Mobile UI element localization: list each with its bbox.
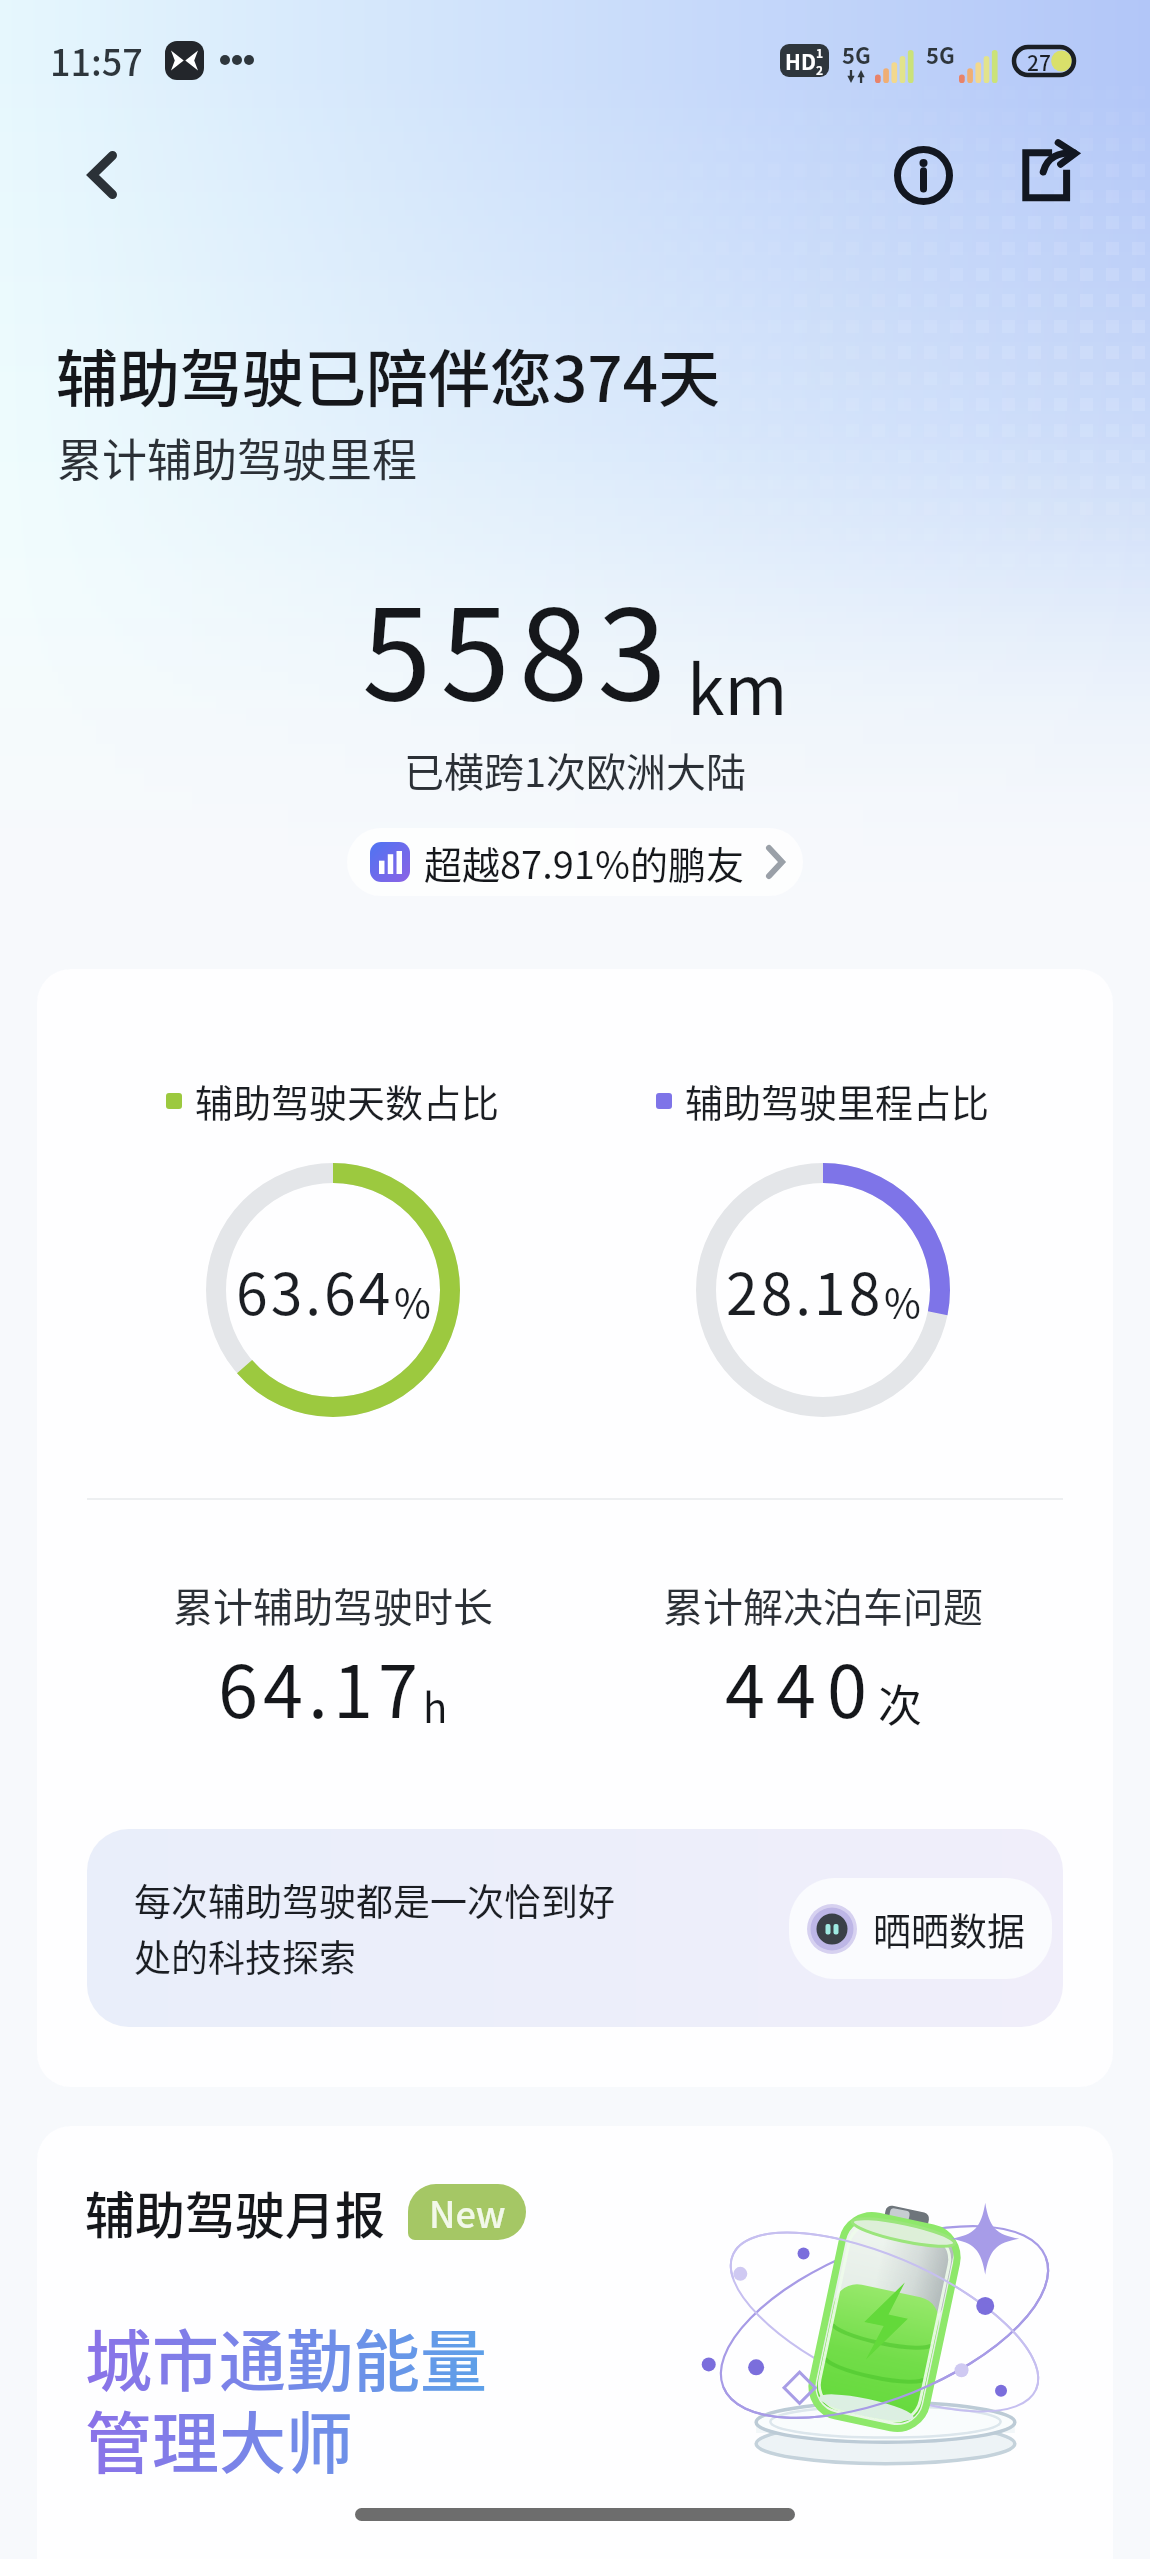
staticText: HD — [785, 46, 816, 76]
staticText: 辅助驾驶天数占比 — [195, 1073, 500, 1128]
staticText: 累计解决泊车问题 — [663, 1576, 983, 1634]
staticText: 27 — [1027, 47, 1051, 75]
button[interactable]: Info — [875, 127, 971, 223]
button[interactable]: 辅助驾驶月报 — [37, 2126, 1113, 2559]
staticText: 2 — [816, 61, 824, 77]
staticText: h — [423, 1677, 448, 1735]
button[interactable]: 超越87.91%的鹏友 — [347, 828, 803, 896]
staticText: 次 — [878, 1671, 922, 1735]
staticText: 每次辅助驾驶都是一次恰到好 处的科技探索 — [134, 1873, 615, 1983]
staticText: 440 — [725, 1634, 878, 1738]
staticText: 64.17 — [218, 1634, 423, 1738]
staticText: 5583 — [362, 555, 676, 736]
staticText: % — [884, 1272, 921, 1330]
button[interactable]: Share — [997, 127, 1093, 223]
staticText: 辅助驾驶里程占比 — [685, 1073, 990, 1128]
staticText: 超越87.91%的鹏友 — [424, 835, 744, 890]
staticText: 晒晒数据 — [873, 1901, 1026, 1956]
staticText: 累计辅助驾驶里程 — [57, 425, 418, 490]
staticText: 辅助驾驶已陪伴您374天 — [56, 330, 721, 420]
staticText: 28.18 — [726, 1249, 884, 1332]
staticText: 累计辅助驾驶时长 — [173, 1576, 493, 1634]
button[interactable]: 晒晒数据 — [789, 1878, 1052, 1979]
staticText: 城市通勤能量 管理大师 — [85, 2308, 487, 2487]
staticText: % — [394, 1272, 431, 1330]
button[interactable]: Back — [54, 127, 150, 223]
staticText: 1 — [816, 44, 824, 61]
staticText: 辅助驾驶月报 — [85, 2176, 385, 2248]
staticText: 63.64 — [236, 1249, 394, 1332]
staticText: 5G — [842, 38, 871, 70]
staticText: 已横跨1次欧洲大陆 — [0, 741, 1150, 799]
staticText: 11:57 — [50, 34, 143, 86]
staticText: New — [429, 2186, 506, 2238]
staticText: km — [687, 636, 788, 734]
staticText: 5G — [926, 38, 955, 70]
